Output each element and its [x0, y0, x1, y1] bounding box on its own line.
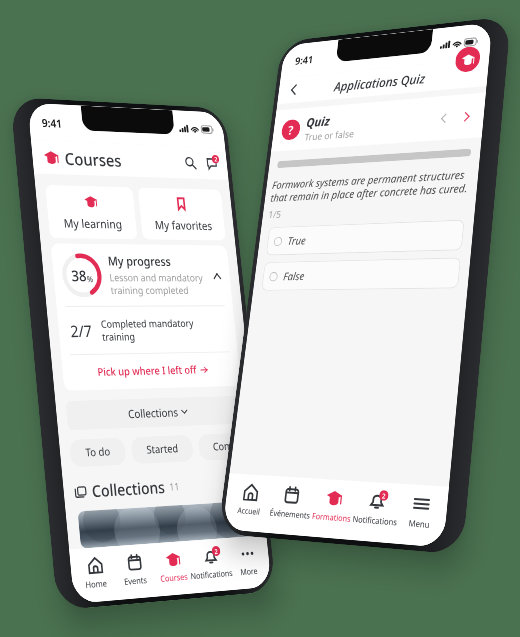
staticText: 2: [214, 547, 218, 556]
button[interactable]: Événements: [266, 484, 314, 536]
staticText: Events: [123, 574, 147, 587]
button[interactable]: Back: [284, 80, 302, 99]
button[interactable]: Events: [113, 552, 157, 600]
staticText: Événements: [269, 506, 311, 521]
button[interactable]: Profile: [454, 46, 481, 73]
staticText: Started: [146, 441, 179, 458]
staticText: Courses: [159, 570, 188, 584]
staticText: %: [86, 273, 94, 285]
staticText: Formations: [311, 509, 351, 524]
button[interactable]: 2: [350, 489, 399, 544]
staticText: Menu: [408, 517, 430, 530]
button[interactable]: Collapse progress: [209, 268, 224, 283]
button[interactable]: Pick up where I left off: [61, 352, 241, 391]
staticText: Pick up where I left off: [97, 363, 197, 380]
button[interactable]: Search: [182, 154, 198, 171]
staticText: Collections: [127, 404, 179, 421]
staticText: False: [282, 269, 306, 283]
button[interactable]: Previous question: [435, 110, 451, 126]
staticText: Completed mandatory training: [100, 316, 200, 344]
staticText: Notifications: [352, 512, 398, 527]
staticText: My favorites: [154, 217, 213, 233]
button[interactable]: Home: [74, 555, 118, 603]
staticText: Home: [85, 577, 107, 590]
button[interactable]: Next question: [459, 108, 475, 125]
button[interactable]: Started: [130, 435, 194, 464]
button[interactable]: My learning: [45, 185, 138, 239]
button[interactable]: Collections: [65, 396, 245, 431]
staticText: To do: [85, 444, 111, 461]
button[interactable]: Menu: [394, 492, 444, 547]
button[interactable]: True: [266, 220, 465, 256]
staticText: 38: [70, 265, 87, 285]
staticText: Formwork systems are permanent structure…: [270, 166, 477, 205]
staticText: 9:41: [41, 115, 63, 131]
staticText: 9:41: [294, 52, 314, 67]
staticText: 1/5: [268, 207, 282, 221]
staticText: True: [287, 233, 307, 248]
staticText: Applications Quiz: [333, 69, 426, 95]
staticText: 2: [381, 491, 386, 501]
staticText: 2: [214, 155, 218, 163]
staticText: 11: [169, 479, 180, 494]
staticText: Courses: [64, 147, 122, 172]
staticText: Completed: [212, 438, 244, 454]
button[interactable]: False: [261, 257, 461, 291]
staticText: Lesson and mandatory training completed: [109, 270, 212, 297]
staticText: Notifications: [190, 567, 233, 581]
button[interactable]: 2: [190, 546, 232, 593]
button[interactable]: Formations: [308, 487, 356, 540]
staticText: My progress: [107, 253, 172, 270]
button[interactable]: [77, 500, 266, 549]
button[interactable]: My favorites: [138, 187, 226, 241]
staticText: Collections: [91, 476, 166, 502]
button[interactable]: To do: [69, 437, 127, 467]
staticText: More: [240, 565, 258, 577]
button[interactable]: Accueil: [226, 481, 272, 533]
staticText: Accueil: [237, 504, 261, 517]
staticText: ?: [287, 121, 295, 138]
button[interactable]: More: [227, 543, 268, 590]
staticText: 2/7: [69, 320, 93, 342]
staticText: Quiz: [305, 112, 331, 131]
button[interactable]: Messages: [203, 154, 220, 172]
button[interactable]: Completed: [197, 432, 258, 461]
staticText: True or false: [304, 127, 355, 143]
button[interactable]: Courses: [152, 549, 195, 597]
staticText: My learning: [63, 215, 123, 231]
